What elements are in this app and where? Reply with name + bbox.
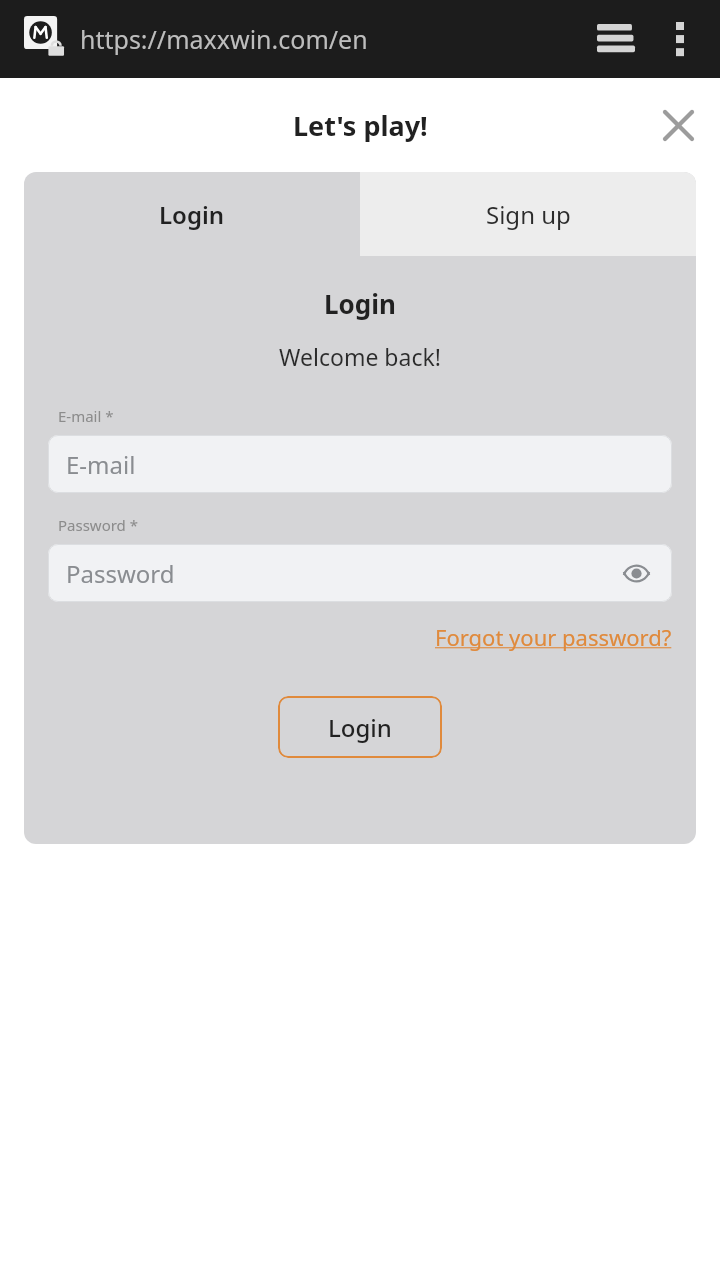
button[interactable]: More options [654,13,706,65]
button[interactable]: E-mail [48,435,672,493]
button[interactable]: Show password [614,551,658,595]
button[interactable]: Site information [24,16,70,62]
staticText: E-mail * [58,406,114,426]
button[interactable]: Close [652,99,704,151]
button[interactable]: Login [278,696,442,758]
staticText: Sign up [486,198,571,231]
staticText: Forgot your password? [435,622,672,652]
staticText: Login [159,198,225,231]
staticText: E-mail [66,448,136,481]
staticText: Let's play! [293,107,428,144]
staticText: Password [66,557,175,590]
staticText: Login [48,286,672,321]
staticText: Login [328,711,392,744]
button[interactable]: Login [24,172,360,256]
button[interactable]: Forgot your password? [435,622,672,652]
button[interactable]: Password [48,544,672,602]
button[interactable]: Tabs [590,13,642,65]
staticText: Welcome back! [48,341,672,372]
button[interactable]: Sign up [360,172,696,256]
staticText: Password * [58,515,139,535]
staticText: https://maxxwin.com/en [80,22,368,56]
